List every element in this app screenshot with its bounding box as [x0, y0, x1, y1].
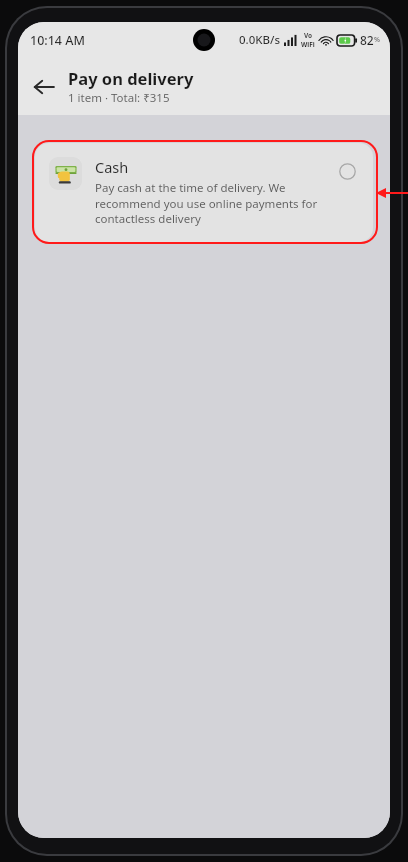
staticText: 1 item · Total: ₹315 [68, 90, 170, 106]
staticText: Cash [95, 157, 129, 177]
staticText: WiFi [301, 40, 315, 49]
staticText: Vo [304, 31, 313, 40]
button[interactable]: Select Cash [335, 159, 359, 183]
staticText: % [374, 35, 380, 45]
button[interactable]: Cash [35, 143, 373, 242]
button[interactable]: Back [22, 65, 66, 109]
staticText: Pay cash at the time of delivery. We rec… [95, 180, 327, 226]
staticText: 10:14 AM [30, 32, 85, 49]
staticText: 82 [360, 32, 374, 48]
staticText: 0.0KB/s [239, 32, 281, 48]
staticText: Pay on delivery [68, 67, 194, 89]
